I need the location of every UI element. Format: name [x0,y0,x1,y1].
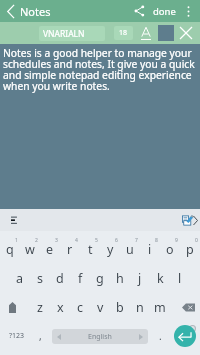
button[interactable]: a [10,265,30,291]
button[interactable]: g [90,265,110,291]
button[interactable]: i [140,236,160,262]
staticText: . [159,329,162,343]
staticText: English [88,332,112,342]
staticText: j [138,270,142,287]
staticText: , [39,329,42,343]
staticText: n [136,299,144,316]
button[interactable]: Share [130,0,149,22]
button[interactable]: x [50,294,70,320]
button[interactable]: e [40,236,60,262]
staticText: r [67,241,73,258]
staticText: Notes is a good helper to manage your sc… [3,46,195,93]
button[interactable]: f [70,265,90,291]
staticText: m [154,299,166,316]
button[interactable]: English [52,329,148,344]
button[interactable]: t [80,236,100,262]
staticText: 18 [119,28,128,38]
button[interactable]: b [110,294,130,320]
staticText: t [88,241,93,258]
staticText: u [126,241,134,258]
button[interactable]: VNARIALN [39,26,105,41]
staticText: d [56,270,64,287]
button[interactable]: Text colour [137,22,155,44]
button[interactable]: h [110,265,130,291]
staticText: 4 [75,237,78,244]
button[interactable]: More options [180,0,196,22]
staticText: b [116,299,124,316]
staticText: 5 [95,237,98,244]
staticText: o [166,241,174,258]
button[interactable]: done [149,5,180,18]
button[interactable]: p [180,236,200,262]
staticText: a [16,270,24,287]
staticText: 7 [135,237,138,244]
button[interactable]: u [120,236,140,262]
staticText: y [107,241,114,258]
button[interactable]: Close [177,22,195,44]
button[interactable]: Shift [2,294,22,320]
button[interactable]: y [100,236,120,262]
staticText: ?123 [9,331,25,341]
button[interactable]: r [60,236,80,262]
button[interactable]: q [0,236,20,262]
staticText: 3 [55,237,58,244]
button[interactable]: Back [0,0,20,22]
button[interactable]: Period [152,323,168,349]
button[interactable]: z [30,294,50,320]
staticText: 0 [195,237,198,244]
staticText: q [6,241,14,258]
staticText: l [178,270,182,287]
button[interactable]: v [90,294,110,320]
button[interactable]: ?123 [2,323,32,349]
button[interactable]: k [150,265,170,291]
button[interactable]: w [20,236,40,262]
staticText: p [186,241,194,258]
button[interactable]: Format [6,209,24,231]
staticText: VNARIALN [43,28,85,40]
staticText: v [97,299,104,316]
button[interactable]: d [50,265,70,291]
button[interactable]: Notes [20,4,51,19]
staticText: h [116,270,124,287]
button[interactable]: Enter [174,325,196,347]
button[interactable]: s [30,265,50,291]
staticText: x [57,299,64,316]
staticText: 9 [175,237,178,244]
staticText: e [46,241,54,258]
button[interactable]: j [130,265,150,291]
button[interactable]: Backspace [177,294,199,320]
staticText: 8 [155,237,158,244]
button[interactable]: 18 [114,26,133,40]
staticText: z [37,299,43,316]
staticText: s [37,270,43,287]
button[interactable]: Comma [32,323,48,349]
staticText: i [148,241,152,258]
button[interactable]: o [160,236,180,262]
staticText: g [96,270,104,287]
staticText: k [157,270,164,287]
staticText: w [25,241,35,258]
button[interactable]: l [170,265,190,291]
staticText: 6 [115,237,118,244]
staticText: c [77,299,84,316]
staticText: 2 [35,237,38,244]
staticText: f [78,270,83,287]
button[interactable]: m [150,294,170,320]
staticText: 1 [15,237,18,244]
button[interactable]: n [130,294,150,320]
button[interactable]: Next [191,209,200,231]
button[interactable]: Edit note [180,209,194,231]
button[interactable]: c [70,294,90,320]
